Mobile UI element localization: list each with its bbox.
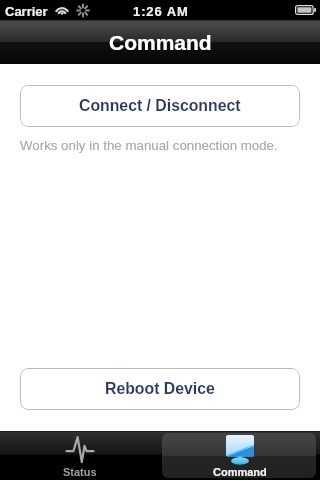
staticText: Status xyxy=(63,466,97,478)
staticText: Command xyxy=(109,31,212,54)
staticText: Reboot Device xyxy=(105,380,215,398)
other: Status xyxy=(65,435,95,462)
staticText: Carrier xyxy=(5,4,48,19)
staticText: Connect / Disconnect xyxy=(79,97,241,115)
button[interactable]: Status xyxy=(0,431,160,480)
other: Command xyxy=(226,435,254,465)
staticText: Command xyxy=(213,466,267,478)
button[interactable]: Reboot Device xyxy=(20,368,300,410)
staticText: Works only in the manual connection mode… xyxy=(20,138,278,153)
button[interactable]: Command xyxy=(160,431,320,480)
staticText: 1:26 AM xyxy=(133,4,189,19)
button[interactable]: Connect / Disconnect xyxy=(20,85,300,127)
